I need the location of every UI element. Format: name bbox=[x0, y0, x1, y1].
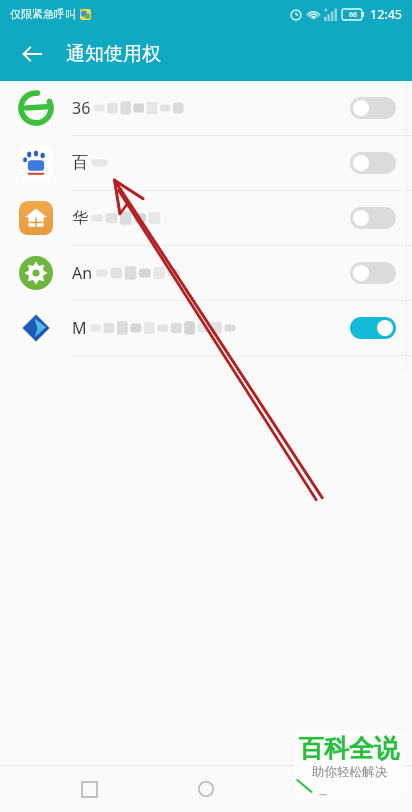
staticText: 66 bbox=[349, 10, 358, 20]
button[interactable]: Toggle on bbox=[350, 317, 396, 339]
staticText: 百科全说 bbox=[299, 733, 399, 764]
staticText: 通知使用权 bbox=[66, 42, 161, 66]
button[interactable]: Toggle off bbox=[350, 262, 396, 284]
button[interactable]: 36 bbox=[0, 81, 412, 135]
button[interactable]: Back bbox=[10, 32, 54, 76]
button[interactable]: Recent apps bbox=[61, 766, 117, 812]
button[interactable]: Toggle off bbox=[350, 152, 396, 174]
button[interactable]: Home bbox=[178, 766, 234, 812]
button[interactable]: 百 bbox=[0, 136, 412, 190]
staticText: 华 bbox=[72, 208, 88, 228]
button[interactable]: Toggle off bbox=[350, 97, 396, 119]
staticText: 百 bbox=[72, 153, 88, 173]
button[interactable]: Back bbox=[295, 766, 351, 812]
staticText: 仅限紧急呼叫 bbox=[10, 7, 76, 21]
staticText: 12:45 bbox=[370, 6, 402, 23]
button[interactable]: M bbox=[0, 301, 412, 355]
button[interactable]: Toggle off bbox=[350, 207, 396, 229]
staticText: M bbox=[72, 317, 87, 339]
button[interactable]: An bbox=[0, 246, 412, 300]
staticText: An bbox=[72, 262, 93, 284]
button[interactable]: 华 bbox=[0, 191, 412, 245]
staticText: 助你轻松解决 bbox=[312, 764, 387, 780]
staticText: 36 bbox=[72, 97, 91, 119]
